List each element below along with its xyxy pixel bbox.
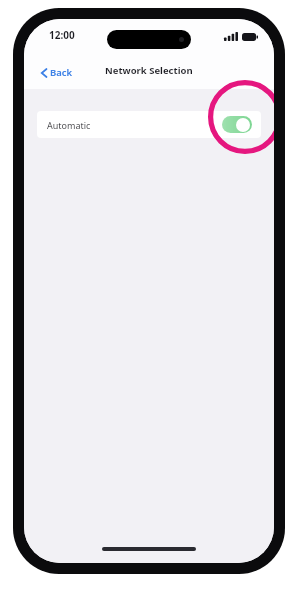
staticText: Network Selection (105, 64, 193, 77)
staticText: Automatic (47, 119, 91, 131)
button[interactable]: Back (36, 63, 78, 82)
button[interactable]: Automatic network selection toggle, on (222, 116, 252, 133)
staticText: Back (50, 66, 73, 79)
staticText: 12:00 (49, 28, 75, 42)
button[interactable]: Automatic (37, 111, 261, 138)
